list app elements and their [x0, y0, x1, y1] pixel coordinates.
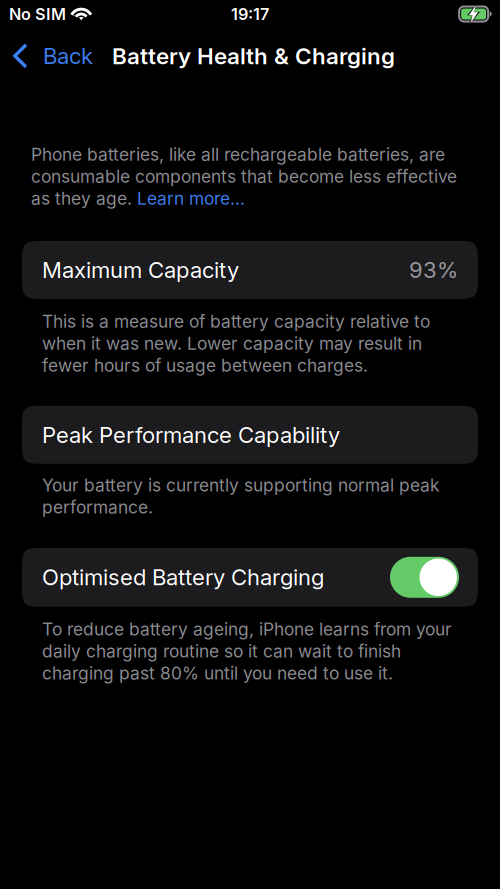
staticText: as they age.	[31, 188, 137, 209]
staticText: 19:17	[231, 4, 269, 24]
staticText: Maximum Capacity	[42, 256, 239, 283]
staticText: 93%	[409, 256, 458, 283]
staticText: Back	[43, 43, 93, 69]
staticText: Peak Performance Capability	[42, 421, 340, 448]
button[interactable]: Peak Performance Capability	[0, 406, 500, 464]
staticText: Optimised Battery Charging	[42, 564, 324, 591]
staticText: daily charging routine so it can wait to…	[42, 641, 401, 662]
staticText: This is a measure of battery capacity re…	[42, 311, 430, 332]
staticText: fewer hours of usage between charges.	[42, 355, 368, 376]
staticText: Battery Health & Charging	[112, 42, 395, 70]
staticText: charging past 80% until you need to use …	[42, 663, 393, 684]
staticText: Your battery is currently supporting nor…	[42, 475, 440, 496]
staticText: when it was new. Lower capacity may resu…	[42, 333, 422, 354]
staticText: performance.	[42, 497, 153, 518]
staticText: To reduce battery ageing, iPhone learns …	[42, 619, 452, 640]
staticText: consumable components that become less e…	[31, 166, 457, 187]
button[interactable]: Optimised Battery Charging, on	[390, 557, 459, 598]
button[interactable]: Optimised Battery Charging	[0, 548, 500, 607]
staticText: No SIM	[9, 4, 66, 24]
button[interactable]: Maximum Capacity	[0, 241, 500, 299]
button[interactable]: Learn more...	[137, 188, 245, 209]
staticText: Phone batteries, like all rechargeable b…	[31, 144, 445, 165]
staticText: Learn more...	[137, 188, 245, 209]
button[interactable]: Back	[0, 36, 105, 76]
